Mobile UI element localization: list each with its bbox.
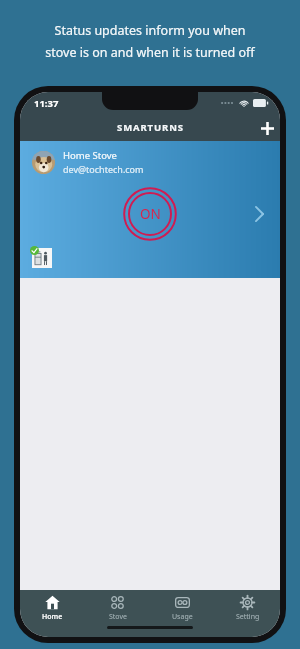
staticText: Status updates inform you when — [14, 22, 286, 39]
button[interactable]: Add stove — [254, 115, 280, 141]
staticText: Setting — [236, 612, 260, 622]
staticText: Stove — [109, 612, 127, 622]
button[interactable]: Usage — [150, 590, 215, 626]
staticText: stove is on and when it is turned off — [14, 44, 286, 61]
button[interactable]: Home — [20, 590, 85, 626]
staticText: Usage — [172, 612, 193, 622]
button[interactable]: Home Stove — [20, 141, 280, 278]
button[interactable]: Stove — [85, 590, 150, 626]
staticText: Home Stove — [63, 149, 117, 162]
staticText: Home — [42, 612, 63, 622]
staticText: 11:37 — [34, 97, 59, 110]
button[interactable]: Stove is on — [123, 187, 177, 241]
staticText: ON — [140, 205, 161, 223]
staticText: SMARTURNS — [117, 121, 184, 134]
button[interactable]: Open stove details — [248, 203, 270, 225]
staticText: dev@tochtech.com — [63, 163, 144, 175]
button[interactable]: Setting — [215, 590, 280, 626]
